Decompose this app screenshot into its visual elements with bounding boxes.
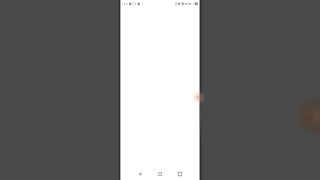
button[interactable]: Home bbox=[154, 166, 168, 180]
button[interactable]: Recents bbox=[177, 166, 191, 180]
button[interactable]: Back bbox=[130, 166, 144, 180]
